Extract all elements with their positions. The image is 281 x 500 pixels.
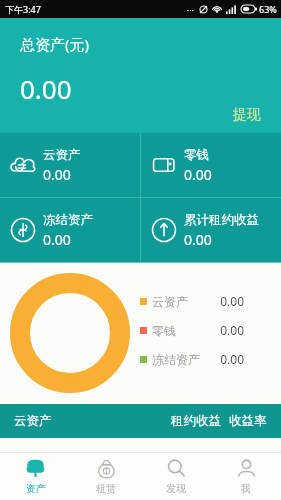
- staticText: 冻结资产: [152, 352, 210, 367]
- staticText: 0.00: [43, 165, 71, 184]
- staticText: 资产: [26, 482, 46, 495]
- button[interactable]: 冻结资产: [0, 198, 140, 262]
- staticText: 发现: [166, 482, 186, 495]
- staticText: 租赁: [96, 482, 116, 495]
- staticText: 63%: [259, 3, 277, 15]
- staticText: 累计租约收益: [184, 212, 259, 228]
- staticText: 0.00: [210, 293, 244, 309]
- staticText: 0.00: [184, 165, 212, 184]
- button[interactable]: 我: [211, 453, 281, 500]
- staticText: 云资产: [43, 147, 81, 163]
- staticText: 提现: [233, 106, 261, 124]
- staticText: 0.00: [210, 351, 244, 367]
- staticText: 收益率: [229, 413, 267, 429]
- button[interactable]: 零钱: [141, 133, 281, 197]
- button[interactable]: 累计租约收益: [141, 198, 281, 262]
- button[interactable]: 资产: [0, 453, 71, 500]
- staticText: 云资产: [152, 294, 210, 309]
- staticText: 下午3:47: [5, 3, 41, 15]
- staticText: 0.00: [184, 230, 212, 249]
- staticText: 冻结资产: [43, 212, 93, 228]
- button[interactable]: 租赁: [71, 453, 141, 500]
- staticText: 零钱: [184, 147, 209, 163]
- staticText: 零钱: [152, 323, 210, 338]
- staticText: 云资产: [14, 413, 52, 429]
- staticText: 总资产(元): [20, 34, 90, 54]
- staticText: 0.00: [43, 230, 71, 249]
- button[interactable]: 提现: [227, 103, 267, 127]
- staticText: 我: [241, 482, 251, 495]
- staticText: 0.00: [20, 71, 72, 106]
- button[interactable]: 云资产: [0, 133, 140, 197]
- button[interactable]: 发现: [141, 453, 211, 500]
- staticText: 租约收益: [171, 413, 221, 429]
- staticText: 0.00: [210, 322, 244, 338]
